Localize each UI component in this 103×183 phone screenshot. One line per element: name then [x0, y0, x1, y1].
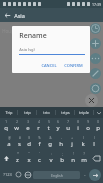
button[interactable]: Close	[85, 94, 98, 107]
staticText: %	[38, 136, 41, 140]
staticText: CONFIRM	[64, 63, 83, 68]
staticText: 3	[27, 120, 29, 124]
staticText: Rename	[19, 31, 47, 41]
staticText: 8	[77, 120, 79, 124]
staticText: 9	[87, 120, 89, 124]
staticText: trio	[43, 110, 50, 115]
button[interactable]: @	[4, 134, 14, 150]
staticText: x	[27, 156, 31, 164]
staticText: Trip	[5, 110, 13, 115]
button[interactable]: %	[34, 134, 44, 150]
button[interactable]: Delete	[90, 83, 101, 94]
button[interactable]: English	[33, 171, 80, 179]
staticText: .	[84, 171, 86, 178]
button[interactable]: $	[24, 134, 34, 150]
staticText: "	[28, 152, 30, 156]
staticText: 1	[5, 120, 7, 124]
button[interactable]: Shift	[0, 150, 12, 166]
button[interactable]: trio	[37, 107, 55, 118]
button[interactable]: Backspace	[89, 150, 103, 166]
button[interactable]: *	[12, 150, 23, 166]
staticText: Asia (sg)	[19, 47, 35, 52]
button[interactable]: 5	[43, 118, 53, 134]
button[interactable]: 2	[11, 118, 22, 134]
staticText: +	[71, 136, 73, 140]
button[interactable]: trip	[18, 107, 36, 118]
staticText: f	[38, 140, 41, 148]
button[interactable]: Emoji	[14, 166, 23, 183]
staticText: t	[47, 124, 50, 132]
staticText: '	[39, 152, 40, 156]
button[interactable]: #	[14, 134, 24, 150]
staticText: 0	[97, 120, 99, 124]
staticText: Asia	[14, 12, 25, 19]
staticText: CANCEL	[41, 63, 57, 68]
staticText: k	[81, 140, 85, 148]
button[interactable]: Enter	[89, 169, 101, 181]
button[interactable]: Alarm	[90, 23, 101, 34]
button[interactable]: triple	[75, 107, 93, 118]
staticText: a	[7, 140, 11, 148]
button[interactable]: Edit	[90, 68, 101, 79]
staticText: y	[56, 124, 60, 132]
button[interactable]: ;	[56, 150, 67, 166]
button[interactable]: Back	[0, 8, 14, 22]
button[interactable]: 6	[53, 118, 63, 134]
staticText: trips	[61, 110, 70, 115]
staticText: s	[18, 140, 21, 148]
staticText: #	[19, 136, 21, 140]
staticText: English	[51, 173, 63, 178]
button[interactable]: Change language	[23, 166, 33, 183]
staticText: n	[71, 156, 75, 164]
button[interactable]: 4	[33, 118, 43, 134]
button[interactable]: 8	[73, 118, 83, 134]
button[interactable]: .	[80, 166, 89, 183]
staticText: ?123	[3, 172, 12, 177]
button[interactable]: &	[44, 134, 55, 150]
staticText: )	[94, 136, 95, 140]
staticText: b	[60, 156, 64, 164]
staticText: !	[73, 152, 74, 156]
staticText: h	[59, 140, 63, 148]
button[interactable]: Add	[90, 38, 101, 49]
staticText: v	[49, 156, 53, 164]
button[interactable]: CONFIRM	[62, 62, 85, 69]
button[interactable]: More suggestions	[94, 107, 103, 118]
button[interactable]: !	[67, 150, 78, 166]
button[interactable]: 7	[63, 118, 73, 134]
button[interactable]: )	[88, 134, 99, 150]
button[interactable]: ?123	[0, 166, 14, 183]
staticText: ?	[83, 152, 85, 156]
staticText: l	[93, 140, 95, 148]
staticText: m	[81, 156, 87, 164]
staticText: triple	[79, 110, 89, 115]
staticText: e	[26, 124, 30, 132]
button[interactable]: ?	[78, 150, 89, 166]
button[interactable]: Trip	[0, 107, 17, 118]
staticText: j	[71, 140, 73, 148]
staticText: 17:39	[92, 2, 101, 7]
staticText: $	[28, 136, 30, 140]
button[interactable]: 0	[93, 118, 103, 134]
button[interactable]: +	[66, 134, 77, 150]
staticText: w	[14, 124, 19, 132]
staticText: c	[38, 156, 41, 164]
button[interactable]: '	[34, 150, 45, 166]
staticText: @	[8, 136, 11, 140]
button[interactable]: CANCEL	[39, 62, 59, 69]
button[interactable]: 3	[22, 118, 33, 134]
button[interactable]: 9	[83, 118, 93, 134]
staticText: -	[61, 136, 62, 140]
button[interactable]: (	[77, 134, 88, 150]
button[interactable]: "	[23, 150, 34, 166]
button[interactable]: :	[45, 150, 56, 166]
button[interactable]: trips	[56, 107, 74, 118]
button[interactable]: -	[55, 134, 66, 150]
staticText: q	[4, 124, 8, 132]
staticText: z	[16, 156, 19, 164]
button[interactable]: More	[90, 53, 101, 64]
button[interactable]: 1	[0, 118, 11, 134]
staticText: 4	[38, 120, 40, 124]
staticText: d	[27, 140, 31, 148]
staticText: :	[51, 152, 52, 156]
